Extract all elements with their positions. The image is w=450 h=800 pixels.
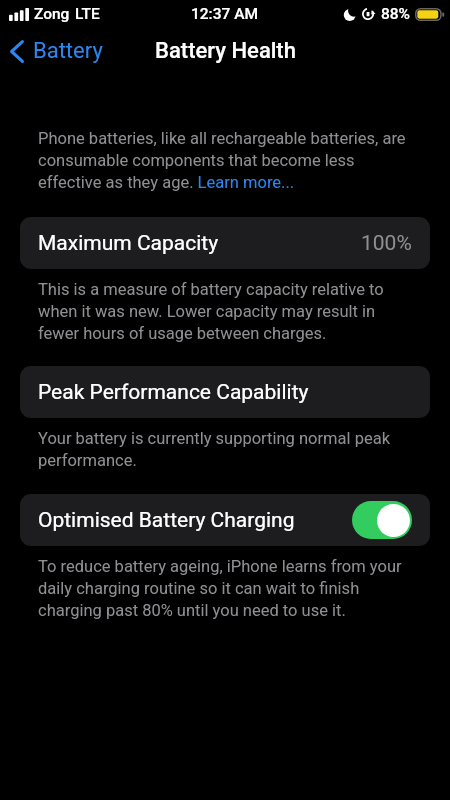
staticText: 88% [381,5,411,23]
staticText: Peak Performance Capability [38,380,309,405]
staticText: Optimised Battery Charging [38,508,295,533]
button[interactable]: Back to Battery [4,32,109,70]
staticText: Phone batteries, like all rechargeable b… [38,129,412,192]
staticText: Zong [34,5,70,23]
staticText: Battery Health [155,38,296,64]
button[interactable]: Optimised Battery Charging [20,494,430,546]
staticText: Your battery is currently supporting nor… [38,429,412,470]
button[interactable]: Maximum Capacity [20,217,430,269]
staticText: Maximum Capacity [38,231,219,256]
button[interactable]: Peak Performance Capability [20,366,430,418]
staticText: Battery [33,38,103,64]
staticText: To reduce battery ageing, iPhone learns … [38,557,412,620]
staticText: 100% [361,231,412,256]
staticText: 12:37 AM [191,5,259,23]
staticText: This is a measure of battery capacity re… [38,280,412,343]
staticText: LTE [75,5,100,23]
button[interactable]: Optimised Battery Charging toggle [352,501,412,539]
